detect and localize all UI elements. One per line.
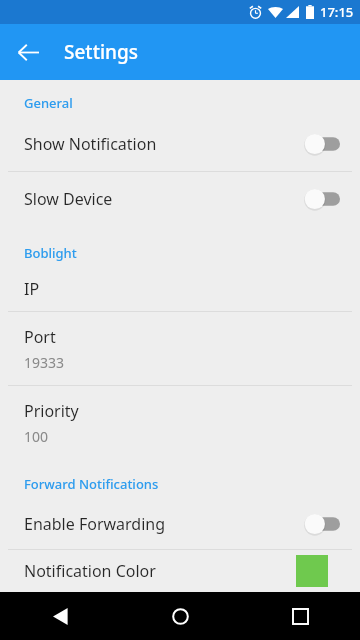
button[interactable]: Port <box>0 312 360 385</box>
staticText: Forward Notifications <box>24 475 159 493</box>
staticText: Slow Device <box>24 188 304 210</box>
button[interactable]: Recent apps <box>240 592 360 640</box>
button[interactable]: IP <box>0 267 360 311</box>
staticText: Notification Color <box>24 560 296 582</box>
staticText: Show Notification <box>24 133 304 155</box>
staticText: Settings <box>64 39 138 65</box>
button[interactable]: Enable Forwarding <box>0 498 360 549</box>
staticText: 19333 <box>24 353 65 372</box>
button[interactable]: Back <box>4 28 52 76</box>
button[interactable]: Slow Device <box>0 172 360 226</box>
button[interactable]: Home <box>120 592 240 640</box>
staticText: Enable Forwarding <box>24 513 304 535</box>
staticText: 17:15 <box>320 3 354 21</box>
button[interactable]: Notification Color <box>0 550 360 592</box>
button[interactable]: Back <box>0 592 120 640</box>
button[interactable]: Priority <box>0 386 360 459</box>
staticText: Port <box>24 326 56 348</box>
button[interactable]: Show Notification <box>0 117 360 171</box>
staticText: General <box>24 94 73 112</box>
staticText: Priority <box>24 400 79 422</box>
staticText: IP <box>24 278 40 300</box>
staticText: 100 <box>24 427 49 446</box>
staticText: Boblight <box>24 244 77 262</box>
